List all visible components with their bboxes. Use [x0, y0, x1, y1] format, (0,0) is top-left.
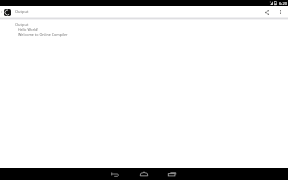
- button[interactable]: Home: [136, 168, 152, 180]
- button[interactable]: Recent apps: [164, 168, 180, 180]
- button[interactable]: Share: [261, 6, 273, 18]
- button[interactable]: Back: [107, 168, 123, 180]
- staticText: Output: [15, 22, 29, 27]
- staticText: Welcome to Online Compiler: [18, 32, 68, 37]
- staticText: Output: [15, 9, 29, 14]
- staticText: Hello World!: [18, 27, 39, 32]
- staticText: 6:20: [279, 1, 288, 7]
- button[interactable]: Navigate up: [0, 6, 4, 18]
- button[interactable]: More options: [274, 6, 286, 18]
